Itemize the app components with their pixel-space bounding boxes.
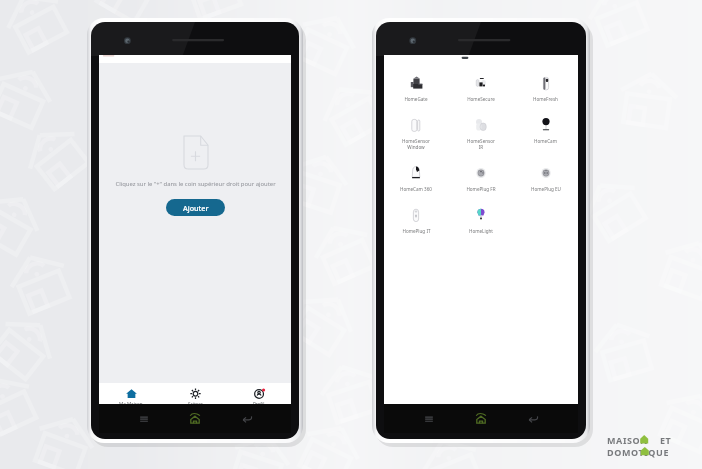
staticText: Ma Maison [119,401,143,404]
staticText: Scènes [188,401,203,404]
staticText: HomeSensor IR [467,138,495,150]
staticText: Profil [253,401,265,404]
staticText: HomePlug IT [402,228,431,234]
button[interactable]: Menu [421,411,437,427]
button[interactable]: Home [188,412,202,426]
staticText: HomeSensor Window [402,138,430,150]
staticText: HomeFresh [533,96,558,102]
button[interactable]: Ajouter [166,199,225,216]
button[interactable]: Profil [227,383,291,404]
button[interactable]: HomeCam [513,116,578,164]
button[interactable]: HomeSecure [448,74,513,116]
button[interactable]: HomePlug IT [384,206,448,248]
button[interactable]: Back [525,411,541,427]
staticText: HomeSecure [467,96,495,102]
staticText: Ajouter [183,203,209,213]
button[interactable]: HomeLight [448,206,513,248]
button[interactable]: Scènes [163,383,227,404]
staticText: HomeLight [469,228,493,234]
button[interactable]: HomeCam 360 [384,164,448,206]
button[interactable]: HomeSensor IR [448,116,513,164]
staticText: Cliquez sur le "+" dans le coin supérieu… [115,180,276,188]
staticText: HomePlug FR [466,186,496,192]
staticText: DOMOTIQUE [607,446,670,458]
button[interactable]: HomeSensor Window [384,116,448,164]
button[interactable]: Menu [136,411,152,427]
staticText: MAISON ET [607,434,672,446]
staticText: HomePlug EU [531,186,561,192]
button[interactable]: Back [239,411,255,427]
button[interactable]: Home [474,412,488,426]
button[interactable]: HomePlug FR [448,164,513,206]
staticText: HomeCam [534,138,557,144]
button[interactable]: HomeFresh [513,74,578,116]
button[interactable]: Ma Maison [99,383,163,404]
staticText: HomeGate [404,96,428,102]
button[interactable]: HomeGate [384,74,448,116]
button[interactable]: HomePlug EU [513,164,578,206]
staticText: HomeCam 360 [400,186,432,192]
